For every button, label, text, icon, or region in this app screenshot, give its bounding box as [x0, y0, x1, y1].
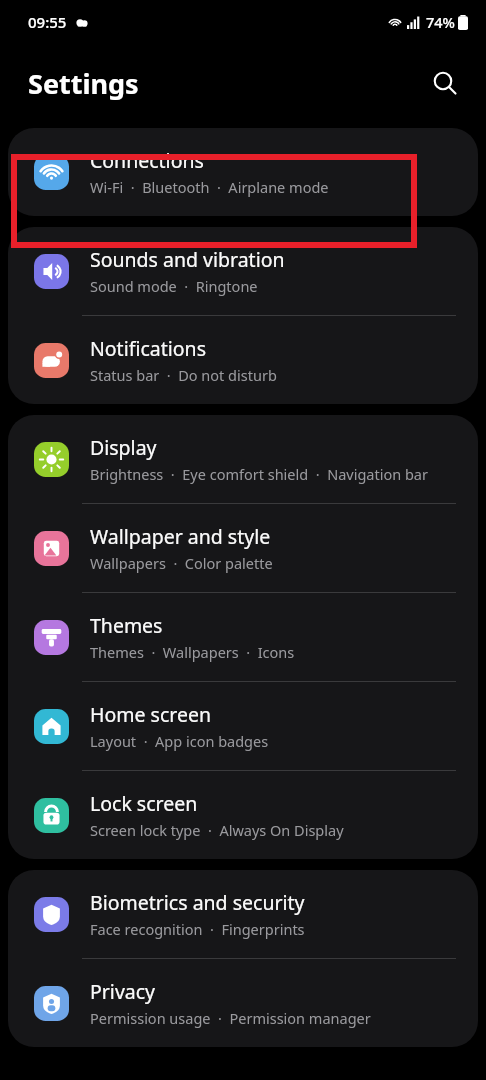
- staticText: Sound mode · Ringtone: [90, 276, 258, 296]
- staticText: Wi-Fi · Bluetooth · Airplane mode: [90, 177, 329, 197]
- staticText: Display: [90, 434, 157, 461]
- staticText: Settings: [28, 65, 139, 102]
- staticText: Sounds and vibration: [90, 246, 285, 273]
- button[interactable]: Connections: [8, 128, 478, 216]
- button[interactable]: Display: [8, 415, 478, 503]
- staticText: Permission usage · Permission manager: [90, 1008, 371, 1028]
- button[interactable]: Themes: [8, 593, 478, 681]
- staticText: Privacy: [90, 978, 156, 1005]
- button[interactable]: Home screen: [8, 682, 478, 770]
- staticText: Biometrics and security: [90, 889, 305, 916]
- button[interactable]: Notifications: [8, 316, 478, 404]
- staticText: Themes · Wallpapers · Icons: [90, 642, 295, 662]
- staticText: Face recognition · Fingerprints: [90, 919, 305, 939]
- button[interactable]: Privacy: [8, 959, 478, 1047]
- button[interactable]: Search: [422, 60, 468, 106]
- button[interactable]: Lock screen: [8, 771, 478, 859]
- staticText: Themes: [90, 612, 163, 639]
- staticText: Wallpaper and style: [90, 523, 271, 550]
- staticText: 09:55: [28, 12, 67, 32]
- staticText: Wallpapers · Color palette: [90, 553, 273, 573]
- staticText: Status bar · Do not disturb: [90, 365, 277, 385]
- button[interactable]: Sounds and vibration: [8, 227, 478, 315]
- button[interactable]: Biometrics and security: [8, 870, 478, 958]
- staticText: Home screen: [90, 701, 211, 728]
- staticText: Screen lock type · Always On Display: [90, 820, 344, 840]
- button[interactable]: Wallpaper and style: [8, 504, 478, 592]
- staticText: Layout · App icon badges: [90, 731, 269, 751]
- staticText: Connections: [90, 147, 204, 174]
- staticText: 74%: [426, 12, 455, 32]
- staticText: Lock screen: [90, 790, 198, 817]
- staticText: Notifications: [90, 335, 206, 362]
- staticText: Brightness · Eye comfort shield · Naviga…: [90, 464, 428, 484]
